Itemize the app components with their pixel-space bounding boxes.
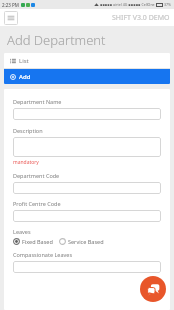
staticText: Department Name (13, 98, 62, 105)
staticText: List (19, 57, 29, 65)
staticText: 2:23 PM (2, 2, 19, 8)
staticText: Add Department (7, 31, 106, 49)
staticText: Description (13, 127, 43, 134)
button[interactable] (13, 210, 161, 222)
button[interactable]: List (4, 53, 170, 68)
staticText: mandatory (13, 159, 39, 166)
button[interactable]: Add (4, 69, 170, 84)
staticText: Profit Centre Code (13, 200, 61, 207)
button[interactable] (13, 182, 161, 194)
staticText: SHIFT V3.0 DEMO (112, 13, 170, 23)
button[interactable] (13, 108, 161, 120)
button[interactable]: Open navigation menu (4, 11, 18, 25)
button[interactable]: Fixed Based (13, 238, 53, 245)
staticText: Compassionate Leaves (13, 251, 73, 258)
staticText: Service Based (68, 238, 104, 245)
staticText: 37% (164, 2, 172, 7)
staticText: Fixed Based (22, 238, 53, 245)
staticText: Leaves (13, 228, 31, 235)
staticText: Add (19, 73, 31, 81)
button[interactable]: Service Based (59, 238, 104, 245)
button[interactable]: Chat support (140, 276, 166, 302)
staticText: ▪▪▪▪▪ airtel 4G ▪▪▪▪▪ CellOne (100, 2, 155, 7)
staticText: Department Code (13, 172, 60, 179)
button[interactable] (13, 261, 161, 273)
button[interactable] (13, 137, 161, 157)
